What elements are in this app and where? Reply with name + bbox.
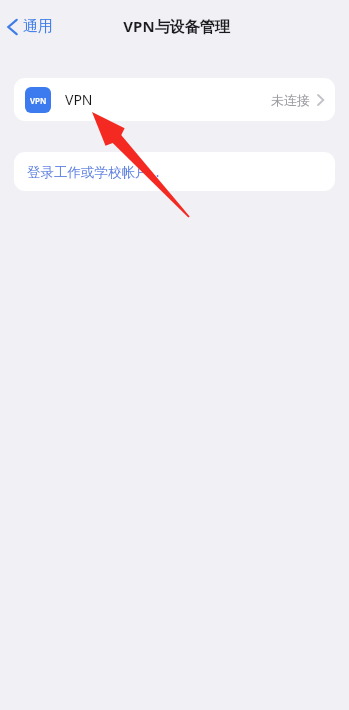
button[interactable]: 通用 [4,13,61,40]
staticText: 通用 [23,17,53,36]
staticText: VPN [30,95,47,106]
staticText: 未连接 [271,92,310,108]
staticText: VPN [65,90,93,109]
button[interactable]: 登录工作或学校帐户... [14,152,335,191]
staticText: 登录工作或学校帐户... [27,163,160,181]
button[interactable]: VPN [14,78,335,121]
staticText: VPN与设备管理 [123,16,230,36]
